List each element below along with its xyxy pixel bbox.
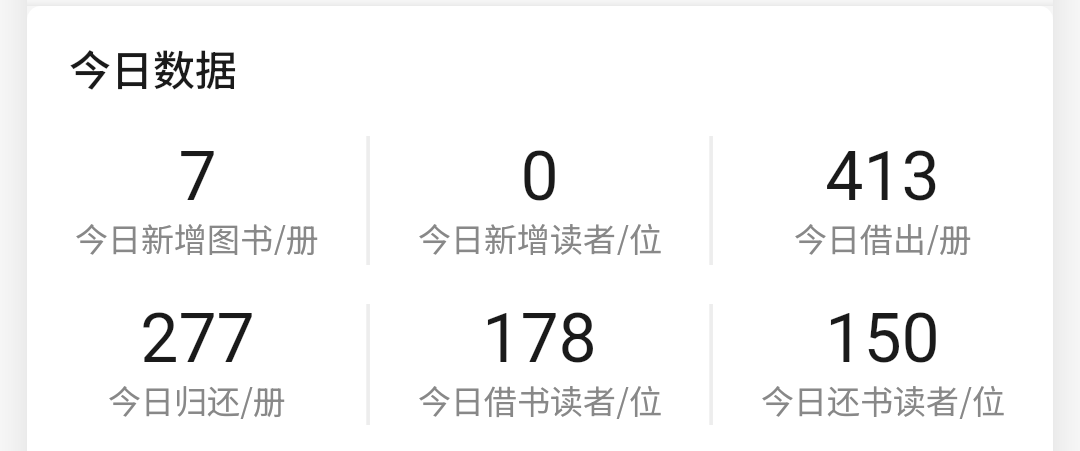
staticText: 今日归还/册 (108, 376, 286, 419)
staticText: 今日数据 (69, 37, 238, 98)
button[interactable]: 277 (27, 258, 367, 422)
staticText: 150 (825, 299, 940, 379)
staticText: 0 (520, 137, 559, 217)
staticText: 413 (825, 137, 940, 217)
staticText: 今日还书读者/位 (761, 376, 1005, 419)
staticText: 今日借书读者/位 (418, 376, 662, 419)
staticText: 今日借出/册 (794, 214, 972, 255)
button[interactable]: 150 (712, 258, 1053, 422)
staticText: 今日新增图书/册 (75, 214, 319, 255)
staticText: 7 (178, 137, 217, 217)
button[interactable]: 178 (369, 258, 710, 422)
staticText: 178 (482, 299, 597, 379)
button[interactable]: 7 (27, 94, 367, 258)
button[interactable]: 413 (712, 94, 1053, 258)
staticText: 今日新增读者/位 (418, 214, 662, 255)
staticText: 277 (140, 299, 255, 379)
button[interactable]: 0 (369, 94, 710, 258)
